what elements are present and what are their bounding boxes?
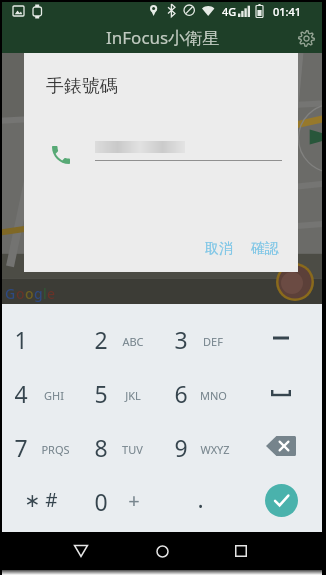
- staticText: G: [5, 284, 16, 303]
- staticText: 2: [94, 324, 108, 352]
- staticText: 1: [14, 324, 28, 352]
- staticText: 3: [174, 324, 188, 352]
- staticText: ABC: [122, 334, 144, 349]
- button[interactable]: [160, 365, 240, 419]
- button[interactable]: [160, 311, 240, 365]
- button[interactable]: Dash: [241, 311, 326, 365]
- staticText: TUV: [122, 442, 143, 457]
- staticText: 手錶號碼: [46, 75, 118, 98]
- button[interactable]: [80, 473, 160, 527]
- button[interactable]: Recents: [221, 532, 261, 570]
- button[interactable]: 確認: [245, 234, 285, 264]
- staticText: 7: [14, 432, 28, 460]
- button[interactable]: 取消: [199, 234, 239, 264]
- staticText: e: [47, 284, 56, 303]
- button[interactable]: Space: [241, 365, 326, 419]
- staticText: 4: [14, 378, 28, 406]
- staticText: ∗ #: [24, 487, 58, 513]
- button[interactable]: Back: [61, 532, 101, 570]
- staticText: +: [128, 487, 140, 514]
- staticText: PRQS: [41, 442, 70, 457]
- button[interactable]: [80, 365, 160, 419]
- staticText: DEF: [203, 334, 223, 349]
- button[interactable]: [0, 473, 80, 527]
- button[interactable]: [160, 473, 240, 527]
- staticText: o: [25, 284, 34, 303]
- staticText: 4G: [222, 4, 237, 19]
- button[interactable]: [0, 419, 80, 473]
- staticText: WXYZ: [200, 442, 230, 457]
- staticText: .: [197, 483, 204, 511]
- staticText: JKL: [125, 388, 141, 403]
- staticText: 5: [94, 378, 108, 406]
- staticText: GHI: [44, 388, 64, 403]
- staticText: InFocus小衛星: [106, 26, 220, 49]
- staticText: 9: [174, 432, 188, 460]
- staticText: MNO: [200, 388, 227, 403]
- staticText: 確認: [251, 240, 279, 258]
- button[interactable]: Settings: [295, 27, 317, 49]
- button[interactable]: Backspace: [241, 419, 326, 473]
- staticText: 0: [94, 486, 108, 514]
- button[interactable]: Confirm: [265, 484, 298, 517]
- button[interactable]: [0, 311, 80, 365]
- staticText: 01:41: [273, 4, 302, 19]
- staticText: o: [16, 284, 25, 303]
- staticText: g: [34, 284, 43, 303]
- button[interactable]: [80, 419, 160, 473]
- button[interactable]: [80, 311, 160, 365]
- button[interactable]: [0, 365, 80, 419]
- staticText: l: [43, 284, 47, 303]
- staticText: 取消: [205, 240, 233, 258]
- button[interactable]: Home: [142, 532, 182, 570]
- staticText: 8: [94, 432, 108, 460]
- staticText: 6: [174, 378, 188, 406]
- button[interactable]: [160, 419, 240, 473]
